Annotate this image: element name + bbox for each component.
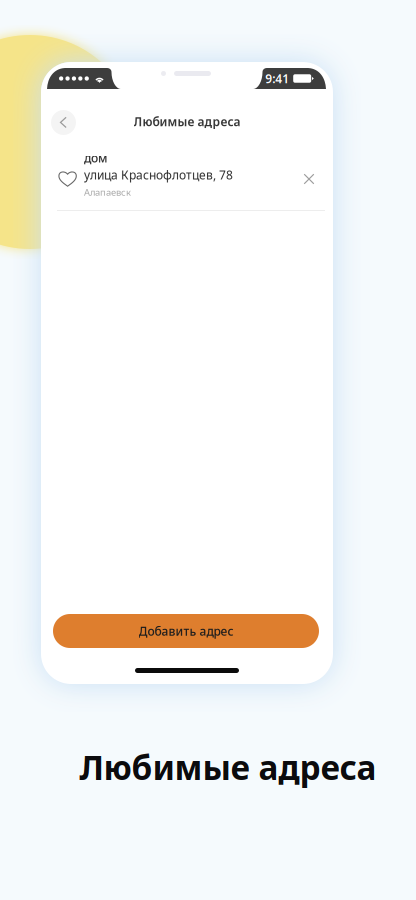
staticText: дом (84, 150, 107, 166)
staticText: Любимые адреса (79, 745, 376, 789)
staticText: Любимые адреса (133, 114, 240, 129)
staticText: улица Краснофлотцев, 78 (84, 167, 233, 183)
staticText: Добавить адрес (138, 623, 233, 639)
button[interactable]: Назад (51, 110, 76, 135)
staticText: 9:41 (265, 70, 289, 86)
button[interactable]: Удалить адрес (297, 167, 321, 191)
button[interactable]: Добавить адрес (53, 614, 319, 648)
staticText: Алапаевск (84, 186, 131, 198)
